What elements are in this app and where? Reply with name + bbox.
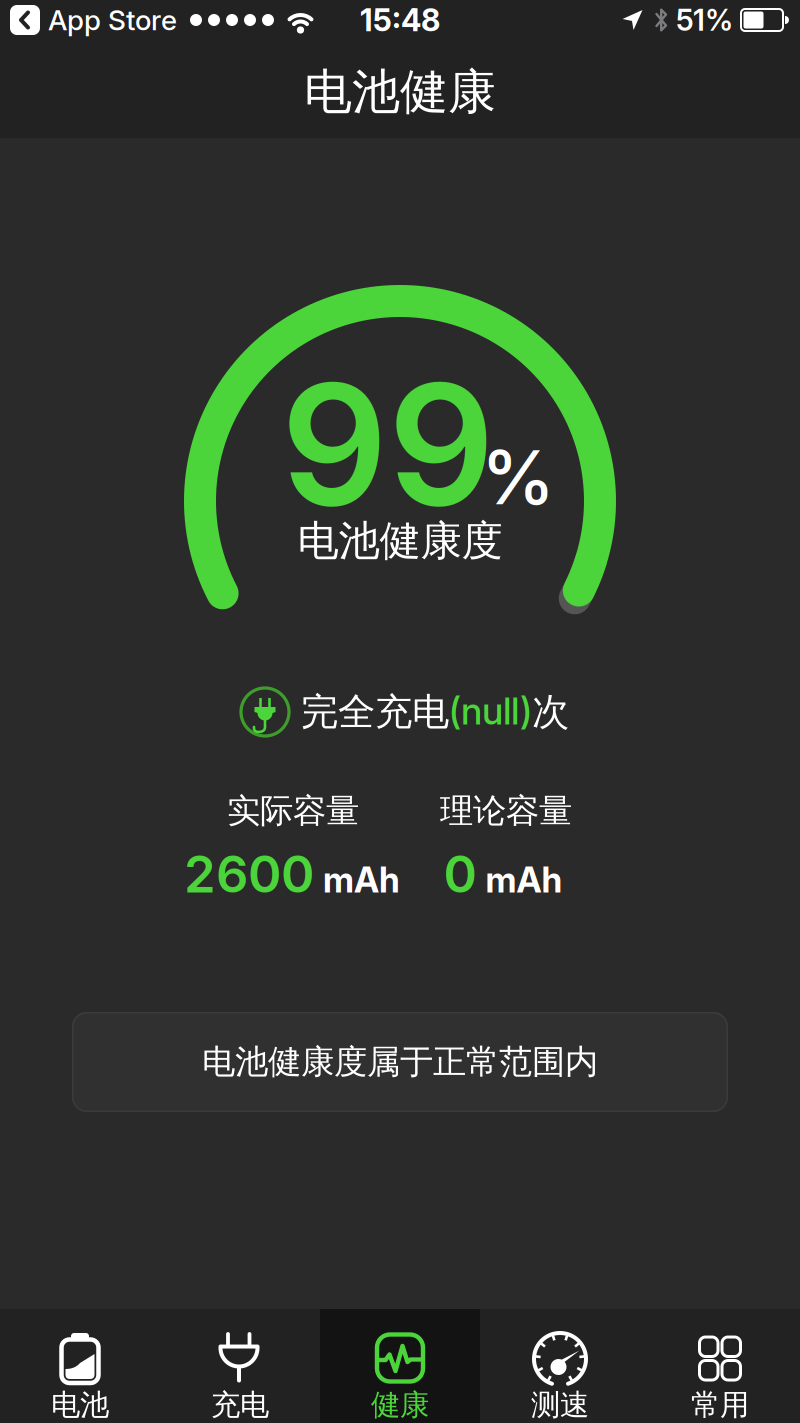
staticText: 实际容量 xyxy=(227,790,359,831)
staticText: 电池健康度属于正常范围内 xyxy=(202,1041,598,1082)
staticText: 常用 xyxy=(691,1387,749,1423)
button[interactable]: 健康 xyxy=(320,1309,480,1423)
staticText: 15:48 xyxy=(360,2,440,38)
staticText: App Store xyxy=(48,3,177,36)
staticText: 99 xyxy=(281,346,495,542)
staticText: 次 xyxy=(532,689,569,735)
staticText: 0 xyxy=(443,844,476,904)
staticText: 完全充电 xyxy=(301,689,449,735)
staticText: (null) xyxy=(449,689,532,733)
button[interactable]: 充电 xyxy=(160,1309,320,1423)
staticText: 51% xyxy=(676,3,733,37)
staticText: % xyxy=(481,433,555,521)
staticText: 电池 xyxy=(51,1387,109,1423)
staticText: 充电 xyxy=(211,1387,269,1423)
button[interactable]: 测速 xyxy=(480,1309,640,1423)
staticText: 电池健康 xyxy=(304,62,496,121)
staticText: 电池健康度 xyxy=(297,516,502,566)
button[interactable]: 电池 xyxy=(0,1309,160,1423)
staticText: 理论容量 xyxy=(440,790,572,831)
staticText: 健康 xyxy=(371,1387,429,1423)
staticText: 测速 xyxy=(531,1387,589,1423)
staticText: 2600 xyxy=(184,844,314,904)
button[interactable]: Back to App Store xyxy=(0,3,177,36)
button[interactable]: 常用 xyxy=(640,1309,800,1423)
staticText: mAh xyxy=(485,859,562,900)
staticText: mAh xyxy=(323,859,400,900)
